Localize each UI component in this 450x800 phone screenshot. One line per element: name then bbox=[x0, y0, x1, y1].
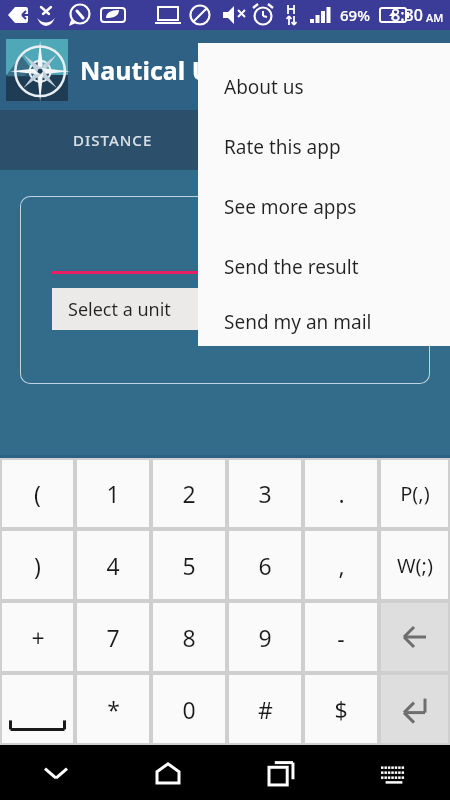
button[interactable]: 9 bbox=[229, 603, 301, 671]
staticText: Select a unit bbox=[68, 297, 171, 322]
staticText: - bbox=[337, 622, 345, 653]
staticText: , bbox=[338, 550, 345, 581]
staticText: 6 bbox=[258, 550, 272, 581]
button[interactable]: , bbox=[305, 531, 377, 599]
button[interactable]: 1 bbox=[77, 460, 149, 527]
staticText: Rate this app bbox=[224, 134, 341, 160]
staticText: . bbox=[338, 478, 345, 509]
button[interactable]: + bbox=[2, 603, 73, 671]
button[interactable]: # bbox=[229, 675, 301, 743]
staticText: * bbox=[107, 694, 120, 725]
staticText: 8:30 bbox=[391, 4, 423, 26]
staticText: 3 bbox=[258, 478, 272, 509]
button[interactable]: SPEED bbox=[225, 110, 450, 170]
staticText: AM bbox=[426, 10, 444, 25]
staticText: 4 bbox=[106, 550, 120, 581]
button[interactable]: P(,) bbox=[381, 460, 448, 527]
button[interactable]: Rate this app bbox=[198, 117, 450, 177]
staticText: Send the result bbox=[224, 254, 359, 280]
button[interactable]: About us bbox=[198, 57, 450, 117]
button[interactable]: 6 bbox=[229, 531, 301, 599]
staticText: See more apps bbox=[224, 194, 357, 220]
staticText: DISTANCE bbox=[73, 130, 153, 150]
button[interactable]: See more apps bbox=[198, 177, 450, 237]
button[interactable]: * bbox=[77, 675, 149, 743]
staticText: 2 bbox=[182, 478, 196, 509]
button[interactable] bbox=[2, 675, 73, 743]
staticText: + bbox=[31, 622, 45, 653]
button[interactable]: . bbox=[305, 460, 377, 527]
staticText: ) bbox=[34, 550, 41, 581]
staticText: 69% bbox=[340, 5, 370, 25]
staticText: # bbox=[258, 694, 273, 725]
staticText: P(,) bbox=[400, 480, 430, 507]
button[interactable]: 2 bbox=[153, 460, 225, 527]
button[interactable]: 8 bbox=[153, 603, 225, 671]
staticText: Nautical Un bbox=[80, 53, 227, 87]
button[interactable]: ) bbox=[2, 531, 73, 599]
staticText: W(;) bbox=[397, 552, 433, 579]
button[interactable]: Select a unit bbox=[52, 288, 404, 330]
button[interactable]: $ bbox=[305, 675, 377, 743]
staticText: ( bbox=[34, 478, 41, 509]
staticText: SPEED bbox=[312, 130, 363, 150]
button[interactable]: Send the result bbox=[198, 237, 450, 297]
button[interactable] bbox=[381, 675, 448, 743]
button[interactable]: 5 bbox=[153, 531, 225, 599]
button[interactable]: 4 bbox=[77, 531, 149, 599]
staticText: 0 bbox=[182, 694, 196, 725]
staticText: Send my an mail bbox=[224, 309, 372, 335]
button[interactable]: DISTANCE bbox=[0, 110, 225, 170]
button[interactable]: 0 bbox=[153, 675, 225, 743]
button[interactable] bbox=[381, 603, 448, 671]
staticText: $ bbox=[334, 694, 348, 725]
button[interactable]: Recents bbox=[224, 745, 337, 800]
button[interactable]: Switch keyboard bbox=[337, 745, 450, 800]
staticText: 5 bbox=[182, 550, 196, 581]
staticText: 8 bbox=[182, 622, 196, 653]
staticText: About us bbox=[224, 74, 304, 100]
button[interactable]: Send my an mail bbox=[198, 297, 450, 346]
button[interactable]: W(;) bbox=[381, 531, 448, 599]
button[interactable]: 3 bbox=[229, 460, 301, 527]
staticText: 9 bbox=[258, 622, 272, 653]
button[interactable]: Hide keyboard bbox=[0, 745, 112, 800]
button[interactable]: - bbox=[305, 603, 377, 671]
button[interactable]: 7 bbox=[77, 603, 149, 671]
button[interactable]: Home bbox=[112, 745, 224, 800]
staticText: 7 bbox=[106, 622, 120, 653]
staticText: 1 bbox=[106, 478, 120, 509]
button[interactable]: ( bbox=[2, 460, 73, 527]
